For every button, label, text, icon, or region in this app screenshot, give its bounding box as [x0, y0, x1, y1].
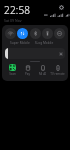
- button[interactable]: Settings: [57, 3, 66, 12]
- staticText: Sat 09 Nov: [4, 18, 22, 23]
- staticText: Super Mobile: [9, 41, 31, 45]
- button[interactable]: Brightness: [5, 48, 65, 59]
- button[interactable]: Wi-Fi: [5, 28, 16, 39]
- staticText: TV remote: [50, 72, 65, 76]
- staticText: Mi AI: [35, 72, 50, 76]
- button[interactable]: Do not disturb: [54, 28, 65, 39]
- staticText: SLog Mobile: [33, 41, 55, 45]
- staticText: 22:58: [4, 3, 31, 17]
- button[interactable]: Scan: [5, 64, 20, 76]
- staticText: Pay: [20, 72, 35, 76]
- button[interactable]: TV remote: [50, 64, 65, 76]
- staticText: Scan: [5, 72, 20, 76]
- button[interactable]: Pay: [20, 64, 35, 76]
- button[interactable]: Flashlight: [42, 28, 53, 39]
- button[interactable]: Bluetooth: [30, 28, 41, 39]
- button[interactable]: Mi AI: [35, 64, 50, 76]
- button[interactable]: Mobile data: [17, 28, 28, 39]
